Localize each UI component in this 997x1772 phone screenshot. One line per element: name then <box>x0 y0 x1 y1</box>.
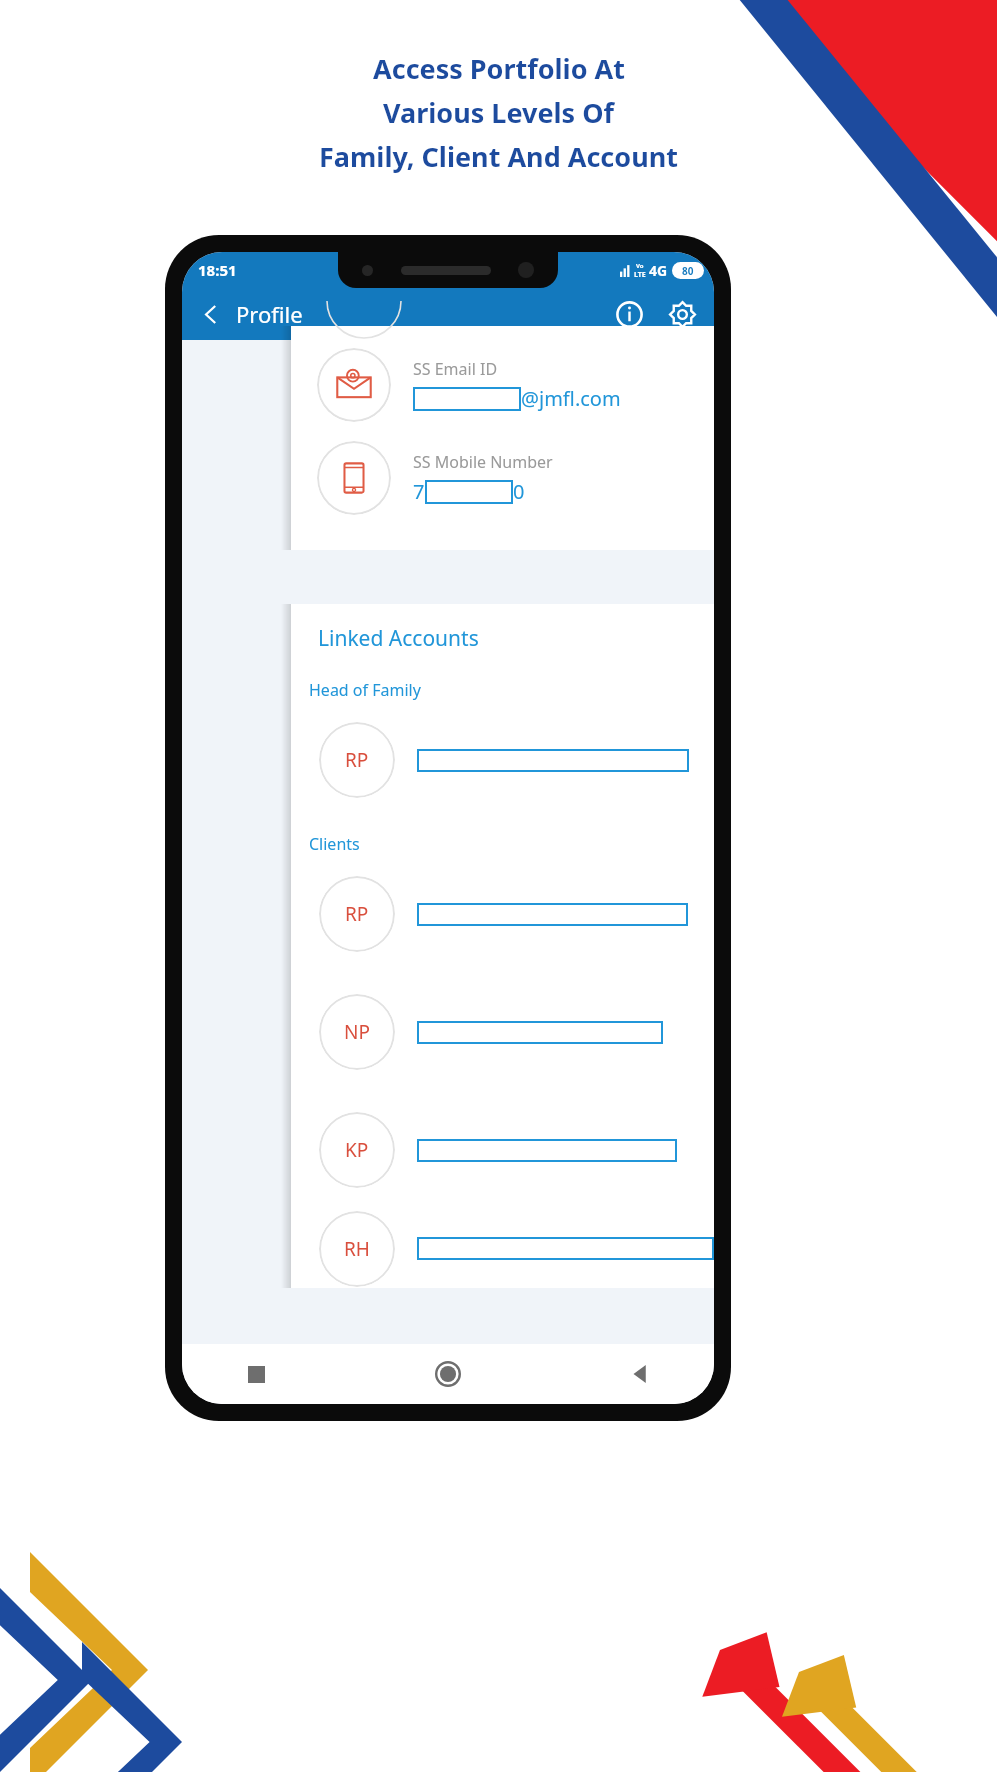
staticText: Profile <box>236 299 303 329</box>
staticText: 80 <box>682 264 694 278</box>
staticText: @jmfl.com <box>521 385 621 412</box>
staticText: RH <box>344 1236 370 1262</box>
button[interactable]: SS Email ID <box>291 338 714 431</box>
staticText: KP <box>345 1137 369 1163</box>
button[interactable]: RH <box>291 1209 714 1288</box>
button[interactable]: NP <box>291 973 714 1091</box>
button[interactable]: Settings <box>660 292 704 336</box>
button[interactable]: Information <box>608 293 650 335</box>
button[interactable]: Back <box>192 295 230 333</box>
staticText: Various Levels Of <box>383 94 614 131</box>
staticText: Access Portfolio At <box>373 50 625 87</box>
staticText: 4G <box>649 261 668 280</box>
staticText: NP <box>344 1019 370 1045</box>
staticText: SS Email ID <box>413 358 498 380</box>
staticText: Clients <box>309 833 360 855</box>
staticText: LTE <box>634 270 646 280</box>
staticText: SS Mobile Number <box>413 451 553 473</box>
button[interactable]: RP <box>291 855 714 973</box>
staticText: Vo <box>636 262 644 270</box>
staticText: 7 <box>413 478 425 505</box>
button[interactable]: KP <box>291 1091 714 1209</box>
staticText: Family, Client And Account <box>319 138 678 175</box>
staticText: 18:51 <box>198 260 237 280</box>
button[interactable]: Home <box>426 1352 470 1396</box>
button[interactable]: Back <box>618 1352 662 1396</box>
staticText: RP <box>345 901 369 927</box>
button[interactable]: RP <box>291 701 714 819</box>
staticText: RP <box>345 747 369 773</box>
staticText: Linked Accounts <box>318 624 479 653</box>
staticText: 0 <box>513 478 525 505</box>
button[interactable]: Recent apps <box>234 1352 278 1396</box>
staticText: Head of Family <box>309 679 421 701</box>
button[interactable]: SS Mobile Number <box>291 431 714 524</box>
